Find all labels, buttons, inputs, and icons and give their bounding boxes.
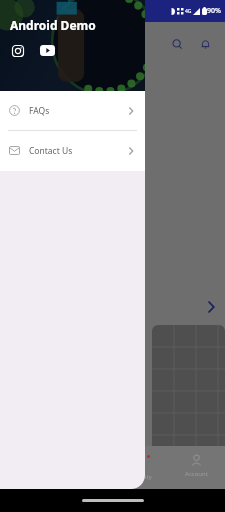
button[interactable]: More — [202, 298, 220, 316]
button[interactable]: Contact Us — [0, 131, 145, 170]
button[interactable]: Instagram — [9, 42, 26, 59]
button[interactable]: FAQs — [0, 91, 145, 130]
staticText: 90% — [207, 6, 221, 16]
button[interactable]: Search — [163, 30, 191, 58]
staticText: 4G — [185, 8, 192, 15]
staticText: 3:01 — [6, 6, 22, 17]
button[interactable]: YouTube — [39, 42, 56, 59]
staticText: Contact Us — [29, 145, 73, 157]
staticText: Android Demo — [10, 17, 96, 33]
button[interactable]: Notifications — [191, 30, 219, 58]
staticText: FAQs — [29, 105, 50, 117]
staticText: Account — [185, 470, 208, 478]
button[interactable]: Account — [178, 454, 214, 478]
staticText: ity — [145, 473, 152, 481]
